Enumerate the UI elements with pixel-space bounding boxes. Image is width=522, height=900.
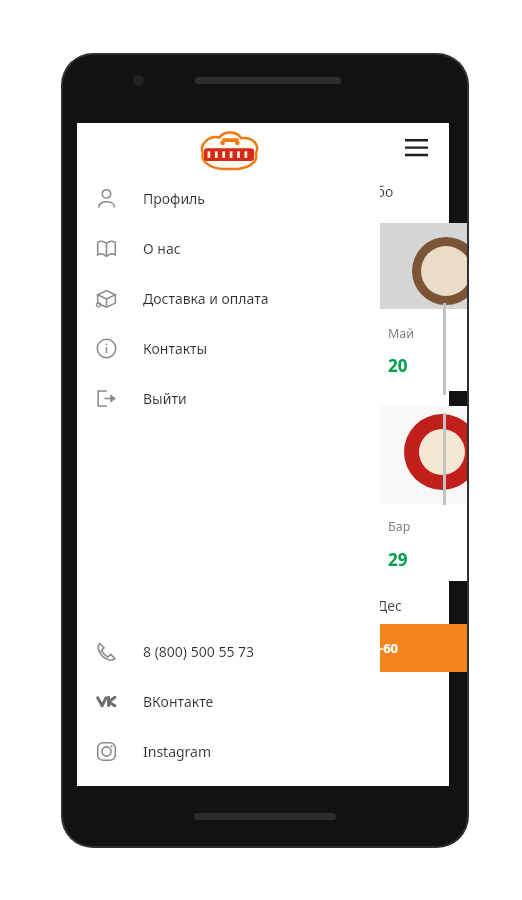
staticText: 8 (800) 500 55 73 bbox=[143, 642, 255, 661]
button[interactable]: Май bbox=[360, 223, 467, 391]
staticText: Май bbox=[388, 325, 415, 342]
staticText: Бар bbox=[388, 518, 411, 535]
staticText: Дес bbox=[377, 596, 402, 615]
staticText: Профиль bbox=[143, 189, 205, 208]
staticText: 20 bbox=[388, 354, 412, 377]
staticText: Instagram bbox=[143, 742, 212, 761]
staticText: -60 bbox=[379, 639, 402, 657]
button[interactable]: Профиль bbox=[77, 173, 380, 223]
staticText: Выйти bbox=[143, 389, 187, 408]
button[interactable]: Menu bbox=[393, 125, 439, 171]
button[interactable]: 8 (800) 500 55 73 bbox=[77, 626, 380, 676]
button[interactable]: Контакты bbox=[77, 323, 380, 373]
button[interactable]: Выйти bbox=[77, 373, 380, 423]
staticText: О нас bbox=[143, 239, 181, 258]
button[interactable]: Instagram bbox=[77, 726, 380, 776]
staticText: ВКонтакте bbox=[143, 692, 214, 711]
button[interactable]: -60 bbox=[361, 624, 467, 672]
button[interactable]: Бар bbox=[360, 406, 467, 581]
button[interactable]: О нас bbox=[77, 223, 380, 273]
staticText: 29 bbox=[388, 548, 412, 571]
staticText: Комбо bbox=[349, 182, 394, 201]
button[interactable]: ВКонтакте bbox=[77, 676, 380, 726]
staticText: Доставка и оплата bbox=[143, 289, 269, 308]
staticText: Контакты bbox=[143, 339, 208, 358]
button[interactable]: Доставка и оплата bbox=[77, 273, 380, 323]
